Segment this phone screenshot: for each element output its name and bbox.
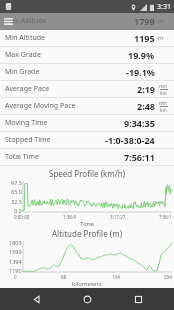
staticText: Speed Profile (km/h) (49, 168, 126, 179)
staticText: 7:56:11 (124, 151, 155, 163)
button[interactable]: Max Altitude (0, 13, 174, 30)
staticText: min (159, 100, 168, 106)
button[interactable]: Open navigation menu (0, 13, 17, 30)
staticText: 1:38:4 (63, 214, 76, 220)
button[interactable]: Stopped Time (0, 132, 174, 149)
staticText: 1394 (9, 258, 22, 265)
staticText: 0.0 (14, 207, 22, 214)
button[interactable]: Back (21, 288, 51, 310)
staticText: Stopped Time (5, 135, 51, 145)
staticText: 3:17:27 (110, 214, 126, 220)
staticText: -19.1% (126, 66, 155, 78)
staticText: 204 (164, 274, 172, 280)
staticText: 65.0 (11, 188, 22, 195)
staticText: 97.5 (11, 179, 22, 186)
button[interactable]: Min Grade (0, 64, 174, 81)
button[interactable]: Average Moving Pace (0, 98, 174, 115)
staticText: Max Altitude (5, 16, 47, 26)
staticText: Moving Time (5, 118, 48, 128)
staticText: Max Grade (5, 50, 41, 60)
staticText: 0:00:00 (14, 214, 30, 220)
staticText: Average Moving Pace (5, 101, 76, 111)
staticText: 1803 (9, 239, 22, 246)
button[interactable]: Total Time (0, 149, 174, 166)
staticText: 32.5 (11, 198, 22, 205)
staticText: 7:56:1 (159, 214, 172, 220)
staticText: 134 (112, 274, 120, 280)
button[interactable]: Moving Time (0, 115, 174, 132)
staticText: 1799 (134, 15, 155, 27)
button[interactable]: Average Pace (0, 81, 174, 98)
staticText: 1190 (9, 267, 22, 274)
staticText: 2:48 (137, 100, 155, 112)
staticText: Altitude Profile (m) (52, 228, 123, 239)
staticText: km (160, 107, 167, 113)
staticText: 9:34:35 (124, 117, 155, 129)
staticText: 2:19 (137, 83, 155, 95)
staticText: m (158, 34, 164, 42)
staticText: Min Altitude (5, 33, 46, 43)
button[interactable]: Max Grade (0, 47, 174, 64)
button[interactable]: Recent apps (123, 288, 153, 310)
staticText: 1195 (134, 32, 155, 44)
staticText: 19.9% (128, 49, 155, 61)
staticText: Total Time (5, 152, 39, 162)
staticText: m (158, 17, 164, 25)
staticText: kilometers (72, 280, 102, 288)
staticText: Min Grade (5, 67, 40, 77)
staticText: km (160, 90, 167, 96)
staticText: 68 (61, 274, 67, 280)
staticText: 0 (14, 274, 17, 280)
staticText: -1:0-38:0-24 (105, 134, 155, 146)
button[interactable]: Min Altitude (0, 30, 174, 47)
staticText: Time (80, 220, 94, 228)
staticText: min (159, 83, 168, 89)
button[interactable]: Home (72, 288, 102, 310)
staticText: 3:31 (157, 2, 171, 12)
staticText: Average Pace (5, 84, 50, 94)
staticText: 1599 (9, 248, 22, 255)
